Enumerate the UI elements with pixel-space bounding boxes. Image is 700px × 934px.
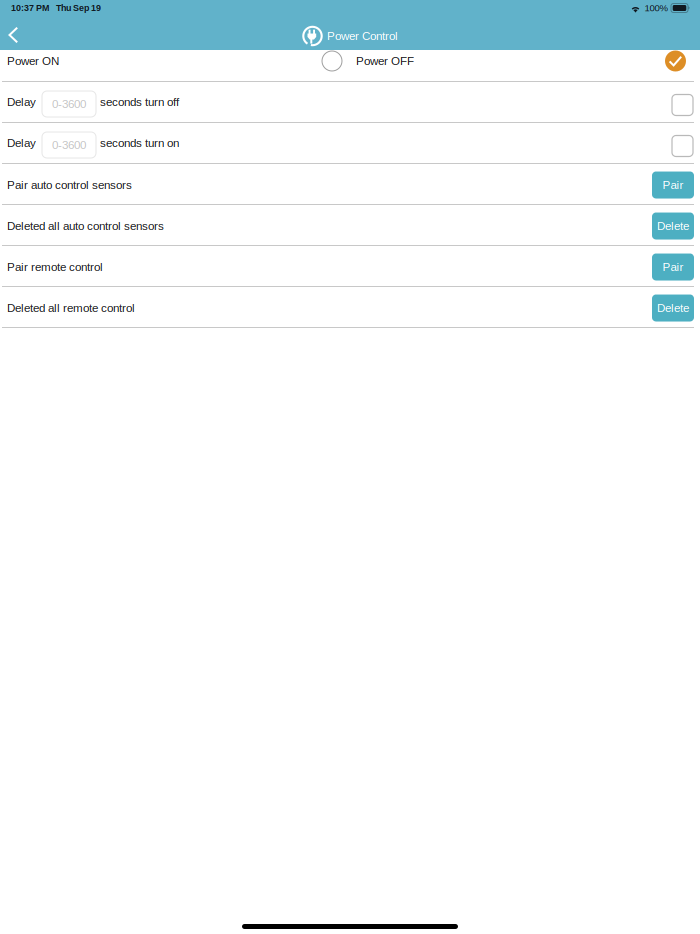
button[interactable]: Delete xyxy=(652,294,694,321)
staticText: Deleted all auto control sensors xyxy=(7,219,164,232)
button[interactable]: Enable seconds turn on xyxy=(672,132,693,153)
staticText: Pair auto control sensors xyxy=(7,178,132,191)
button[interactable]: Pair remote control xyxy=(0,253,652,280)
staticText: Power ON xyxy=(7,54,59,67)
button[interactable]: Power ON xyxy=(0,50,322,72)
staticText: Delete xyxy=(657,219,689,232)
button[interactable]: Back xyxy=(0,22,30,49)
staticText: seconds turn on xyxy=(100,136,179,149)
button[interactable]: Deleted all auto control sensors xyxy=(0,212,652,239)
button[interactable]: Deleted all remote control xyxy=(0,294,652,321)
staticText: Delay xyxy=(7,95,36,108)
staticText: Delete xyxy=(657,301,689,314)
staticText: 10:37 PM xyxy=(11,3,49,13)
staticText: Power Control xyxy=(327,29,398,42)
staticText: Pair xyxy=(662,260,683,273)
staticText: Pair xyxy=(662,178,683,191)
button[interactable]: Delay xyxy=(0,89,672,115)
staticText: 0-3600 xyxy=(52,97,86,110)
button[interactable]: Delete xyxy=(652,212,694,239)
staticText: Pair remote control xyxy=(7,260,103,273)
button[interactable]: Delay xyxy=(0,130,672,156)
button[interactable]: Pair auto control sensors xyxy=(0,171,652,198)
staticText: 0-3600 xyxy=(52,138,86,151)
staticText: Delay xyxy=(7,136,36,149)
staticText: Power OFF xyxy=(356,54,414,67)
staticText: seconds turn off xyxy=(100,95,179,108)
button[interactable]: Enable seconds turn off xyxy=(672,91,693,112)
button[interactable]: Pair xyxy=(652,253,694,280)
button[interactable]: Pair xyxy=(652,171,694,198)
staticText: Thu Sep 19 xyxy=(56,3,101,13)
staticText: 100% xyxy=(644,3,668,13)
button[interactable]: Power OFF xyxy=(322,50,665,72)
button[interactable]: Selected xyxy=(665,50,686,71)
staticText: Deleted all remote control xyxy=(7,301,135,314)
